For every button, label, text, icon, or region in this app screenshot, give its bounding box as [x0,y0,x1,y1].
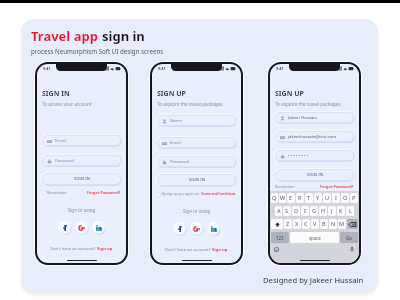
button[interactable]: jakeerhussain@test.com [275,131,354,142]
button[interactable]: V [311,219,319,229]
button[interactable]: Checkbox [42,191,45,194]
staticText: Remember [47,190,67,195]
button[interactable]: I [332,193,340,203]
staticText: Designed by Jakeer Hussain [263,275,364,285]
staticText: O [343,194,348,202]
staticText: U [325,194,330,202]
staticText: A [277,207,281,215]
button[interactable]: SIGN IN [157,174,236,186]
staticText: SIGN IN [42,89,70,99]
staticText: 9:41 [276,66,284,71]
staticText: SIGN IN [307,172,323,178]
staticText: Z [286,220,290,228]
staticText: Sign in using [42,207,121,213]
staticText: I [335,194,337,202]
button[interactable]: G [310,206,318,216]
button[interactable]: Z [284,219,292,229]
button[interactable]: O [341,193,349,203]
button[interactable]: A [275,206,282,216]
button[interactable]: Email [157,137,236,148]
staticText: G [312,207,317,215]
staticText: SIGN UP [275,89,304,99]
button[interactable]: LinkedIn [208,223,220,235]
staticText: 123 [276,235,284,241]
button[interactable]: E [287,193,295,203]
staticText: sign in [102,27,145,45]
button[interactable]: U [323,193,331,203]
button[interactable]: D [292,206,300,216]
button[interactable]: J [328,206,336,216]
staticText: K [339,207,343,215]
button[interactable]: X [293,219,301,229]
staticText: Password [55,158,74,164]
button[interactable]: S [283,206,291,216]
staticText: jakeerhussain@test.com [288,134,337,140]
staticText: C [304,220,308,228]
button[interactable]: SIGN IN [42,173,121,185]
staticText: L [349,207,352,215]
staticText: Don't have an account? [50,246,97,252]
staticText: W [280,194,286,202]
staticText: S [285,207,289,215]
button[interactable]: Password [157,156,236,167]
staticText: SIGN IN [74,176,90,182]
button[interactable]: • • • • • • • • [275,150,354,161]
staticText: space [309,235,321,241]
staticText: Go [346,235,352,241]
button[interactable]: Sign up [212,247,228,253]
button[interactable]: Go [340,232,358,243]
button[interactable]: Facebook [59,222,71,234]
button[interactable]: Jakeer Hussain [275,112,354,123]
button[interactable]: T [305,193,313,203]
staticText: D [294,207,299,215]
staticText: Remember [275,184,295,189]
button[interactable]: Name [157,115,236,126]
staticText: To explore the travel packages [275,101,341,107]
button[interactable]: W [279,193,286,203]
button[interactable]: Forgot Password? [87,190,121,195]
staticText: process Neumorphism Soft UI design scree… [31,47,164,55]
staticText: Name [170,118,182,124]
button[interactable]: Sign up [97,246,113,252]
button[interactable]: R [296,193,304,203]
button[interactable]: H [319,206,327,216]
button[interactable]: Checkbox [157,193,160,196]
staticText: N [331,220,336,228]
button[interactable]: Password [42,155,121,166]
button[interactable]: Backspace [347,219,358,229]
button[interactable]: Shift [271,219,283,229]
button[interactable]: Google plus [76,222,88,234]
staticText: SIGN UP [157,89,186,99]
button[interactable]: B [320,219,328,229]
button[interactable]: Q [271,193,278,203]
staticText: H [321,207,326,215]
button[interactable]: F [301,206,309,216]
button[interactable]: Email [42,135,121,146]
button[interactable]: Google plus [191,223,203,235]
button[interactable]: LinkedIn [93,222,105,234]
staticText: Password [170,159,189,165]
button[interactable]: M [338,219,346,229]
staticText: X [295,220,299,228]
button[interactable]: K [337,206,345,216]
button[interactable]: SIGN IN [275,169,354,181]
staticText: E [289,194,293,202]
staticText: To access your account [42,101,92,107]
button[interactable]: N [329,219,337,229]
staticText: By sign up you agree our [162,192,201,196]
button[interactable]: C [302,219,310,229]
button[interactable]: 123 [271,232,289,243]
staticText: Q [272,194,277,202]
button[interactable]: Y [314,193,322,203]
staticText: M [339,220,345,228]
button[interactable]: Terms and Conditions [201,192,236,196]
button[interactable]: Forgot Password? [320,184,354,189]
staticText: Jakeer Hussain [288,115,317,121]
button[interactable]: L [346,206,354,216]
staticText: T [307,194,311,202]
staticText: B [322,220,326,228]
button[interactable]: Facebook [174,223,186,235]
button[interactable]: P [350,193,358,203]
staticText: P [352,194,356,202]
button[interactable]: space [290,232,339,243]
